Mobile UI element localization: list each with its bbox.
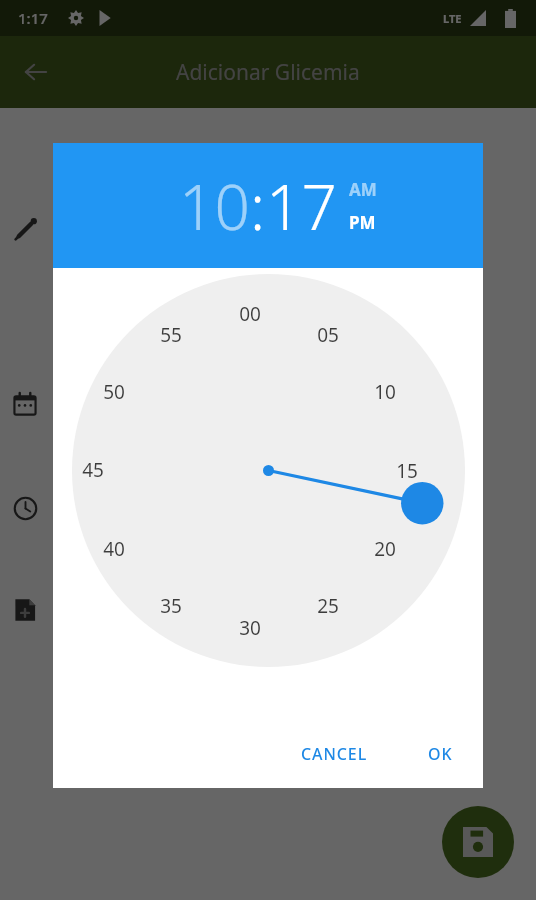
- staticText: 30: [239, 615, 261, 641]
- button[interactable]: PM: [349, 211, 376, 234]
- button[interactable]: 10: [179, 164, 250, 248]
- staticText: 40: [103, 536, 125, 562]
- staticText: 10: [374, 379, 396, 405]
- staticText: :: [250, 164, 266, 248]
- staticText: 25: [317, 593, 339, 619]
- staticText: 20: [374, 536, 396, 562]
- staticText: 50: [103, 379, 125, 405]
- staticText: 35: [160, 593, 182, 619]
- button[interactable]: Minute dial: [72, 274, 465, 667]
- staticText: 15: [396, 458, 418, 484]
- button[interactable]: Back: [10, 46, 62, 98]
- staticText: 55: [160, 322, 182, 348]
- button[interactable]: Save: [442, 806, 514, 878]
- button[interactable]: CANCEL: [289, 735, 380, 773]
- staticText: OK: [428, 743, 453, 765]
- staticText: 45: [82, 457, 104, 483]
- staticText: Adicionar Glicemia: [176, 58, 360, 87]
- staticText: LTE: [443, 11, 462, 26]
- button[interactable]: 17: [266, 164, 337, 248]
- staticText: CANCEL: [301, 743, 368, 765]
- staticText: 1:17: [18, 8, 48, 28]
- staticText: 00: [239, 301, 261, 327]
- button[interactable]: AM: [349, 178, 377, 201]
- button[interactable]: OK: [416, 735, 465, 773]
- staticText: 05: [317, 322, 339, 348]
